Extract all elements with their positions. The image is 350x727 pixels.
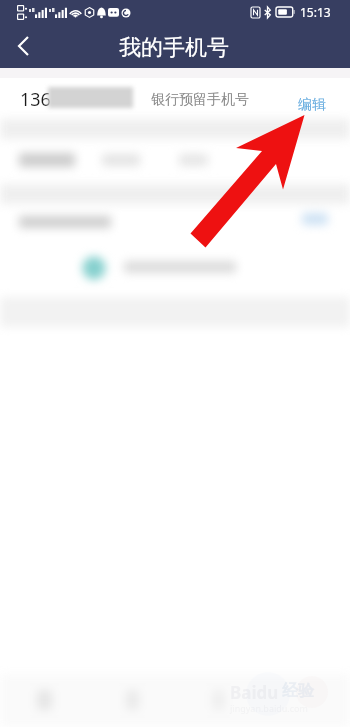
staticText: 编辑 [298, 96, 326, 114]
staticText: 银行预留手机号 [151, 91, 249, 109]
button[interactable]: 编辑 [287, 85, 337, 115]
button[interactable]: 136 [0, 80, 350, 120]
staticText: Baidu [230, 681, 279, 704]
staticText: 经验 [282, 681, 314, 701]
button[interactable]: Back [0, 24, 48, 68]
staticText: 136 [20, 87, 51, 112]
staticText: 15:13 [300, 4, 331, 20]
staticText: 我的手机号 [119, 34, 229, 62]
